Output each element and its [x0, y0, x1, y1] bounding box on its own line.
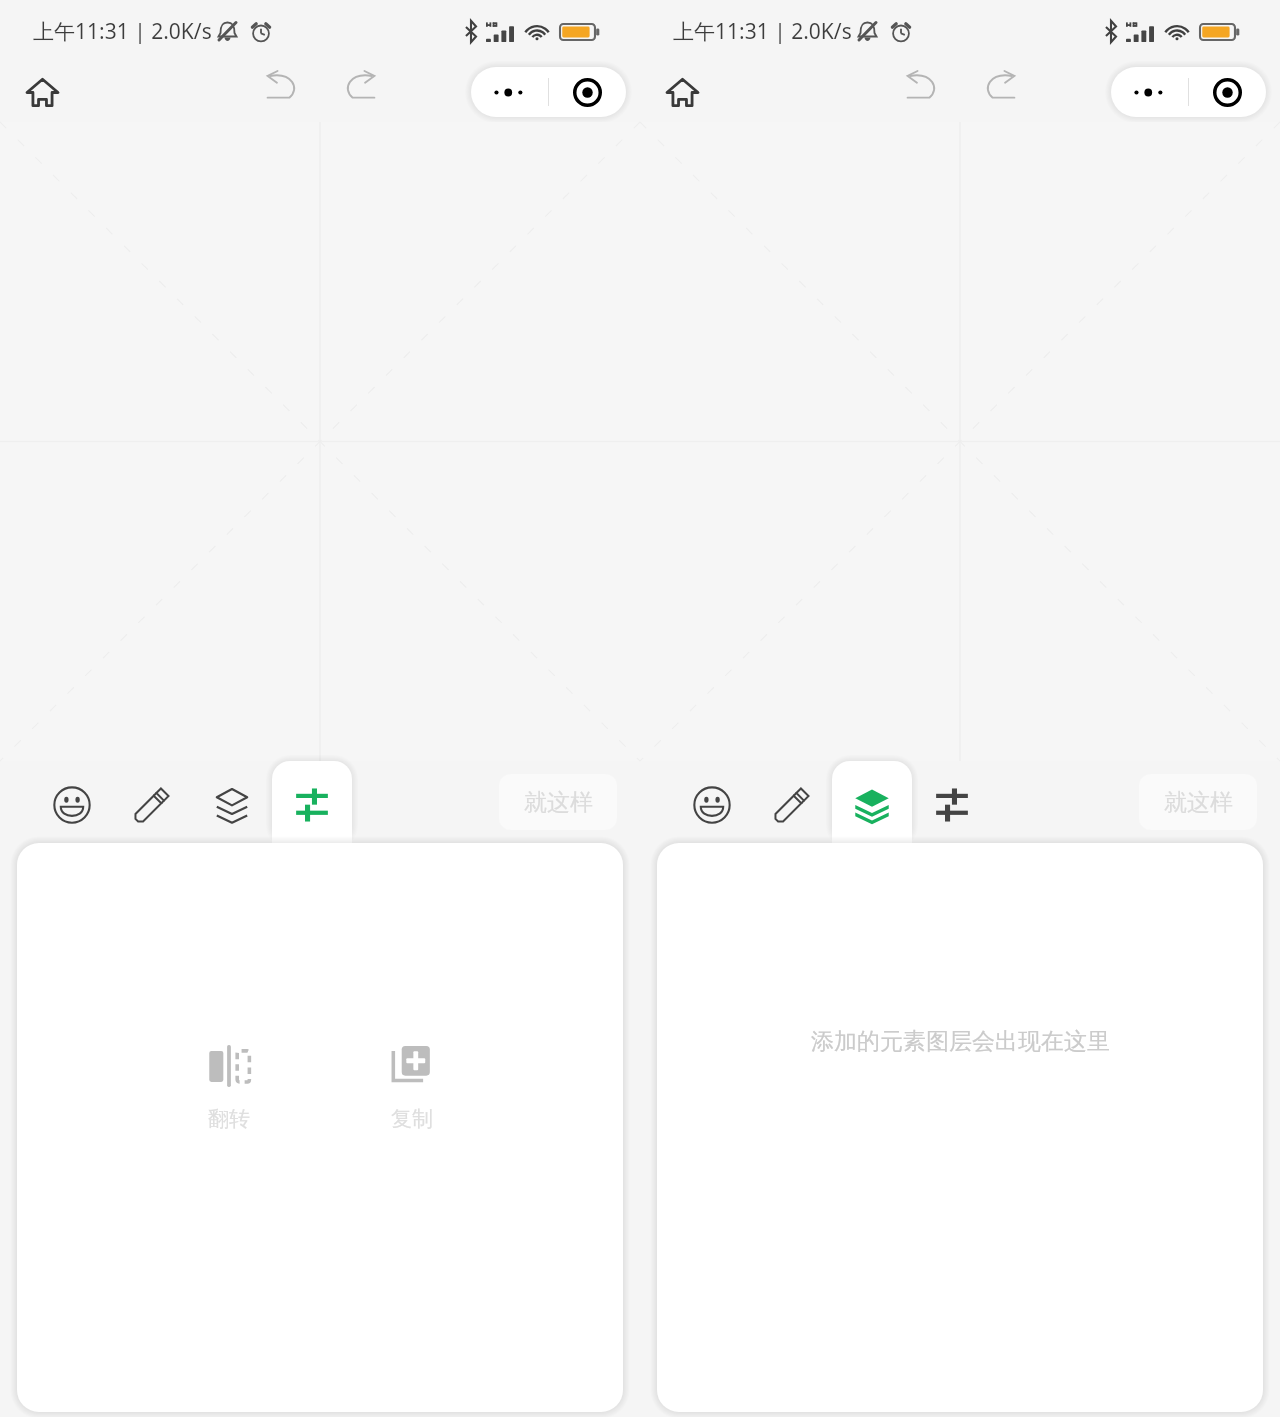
button[interactable]: Home — [19, 69, 66, 116]
button[interactable]: 翻转 — [169, 1045, 289, 1132]
button[interactable]: Stickers — [32, 761, 112, 843]
staticText: 复制 — [391, 1106, 433, 1132]
button[interactable]: Record — [549, 67, 626, 117]
button[interactable]: 就这样 — [499, 774, 617, 830]
staticText: 就这样 — [524, 788, 593, 817]
staticText: 翻转 — [208, 1106, 250, 1132]
button[interactable]: Stickers — [672, 761, 752, 843]
staticText: 上午11:31 | 2.0K/s — [33, 17, 212, 46]
button[interactable]: Home — [659, 69, 706, 116]
button[interactable]: Layers — [192, 761, 272, 843]
staticText: 就这样 — [1164, 788, 1233, 817]
button[interactable]: Undo — [899, 69, 945, 115]
button[interactable]: Undo — [259, 69, 305, 115]
button[interactable]: 就这样 — [1139, 774, 1257, 830]
button[interactable]: Draw — [112, 761, 192, 843]
button[interactable]: 复制 — [352, 1045, 472, 1132]
button[interactable]: Redo — [336, 69, 382, 115]
button[interactable]: Redo — [976, 69, 1022, 115]
staticText: 添加的元素图层会出现在这里 — [811, 1027, 1110, 1056]
button[interactable]: Adjust — [912, 761, 992, 843]
button[interactable]: Draw — [752, 761, 832, 843]
button[interactable]: Adjust — [272, 761, 352, 843]
staticText: 上午11:31 | 2.0K/s — [673, 17, 852, 46]
button[interactable]: Record — [1189, 67, 1266, 117]
button[interactable]: Recents — [1111, 67, 1188, 117]
button[interactable]: Layers — [832, 761, 912, 843]
button[interactable]: Recents — [471, 67, 548, 117]
